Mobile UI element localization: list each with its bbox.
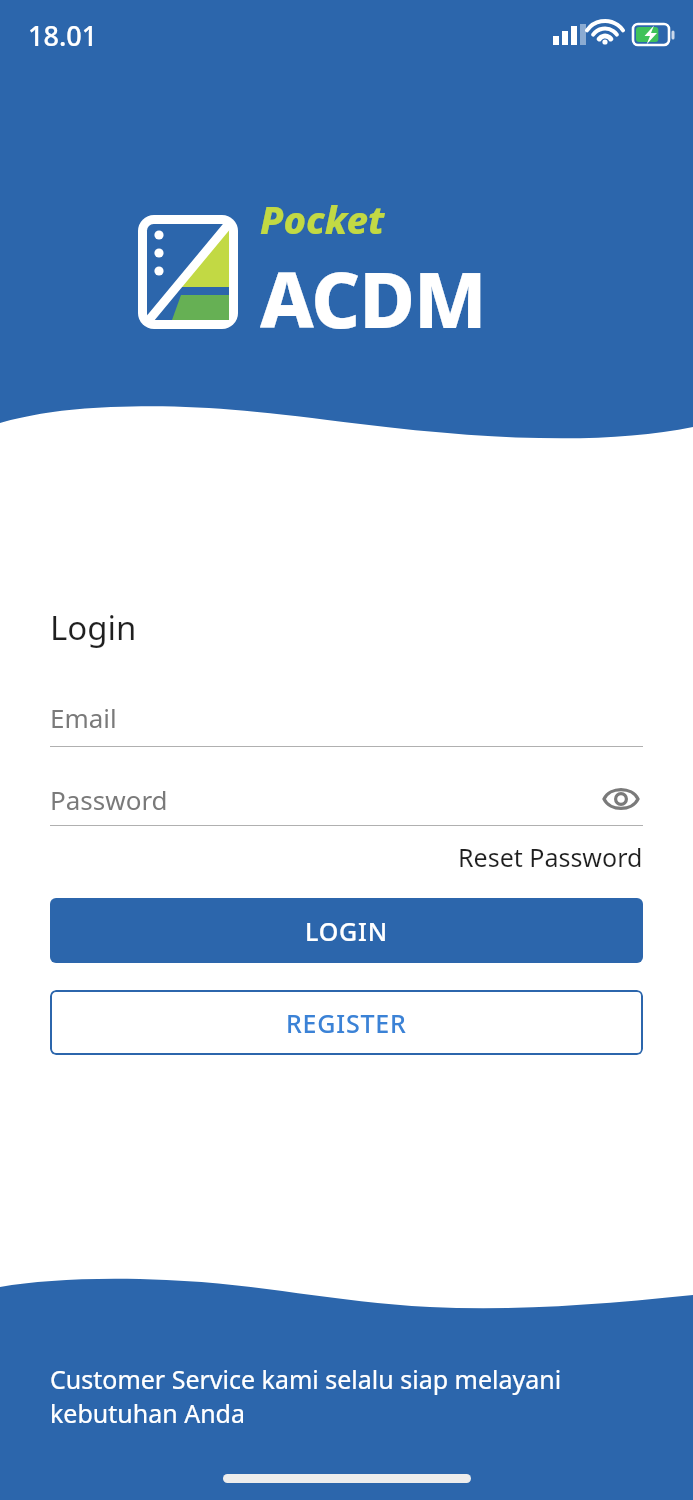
button[interactable]: Show password [599,777,643,821]
staticText: Login [50,605,137,650]
staticText: ACDM [260,247,486,351]
staticText: Customer Service kami selalu siap melaya… [50,1362,562,1430]
staticText: Password [50,782,168,817]
staticText: Email [50,700,117,735]
staticText: REGISTER [286,1006,407,1040]
button[interactable]: Password [50,773,643,825]
staticText: Reset Password [458,840,643,874]
button[interactable]: LOGIN [50,898,643,963]
staticText: LOGIN [305,914,388,948]
staticText: 18.01 [28,17,98,54]
staticText: Pocket [260,193,385,245]
button[interactable]: Email [50,688,643,746]
button[interactable]: REGISTER [50,990,643,1055]
button[interactable]: Reset Password [458,840,643,874]
